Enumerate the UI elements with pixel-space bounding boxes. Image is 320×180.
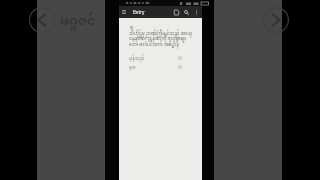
button[interactable]: Bookmark xyxy=(172,8,180,16)
button[interactable]: More options xyxy=(192,8,200,16)
button[interactable]: Search xyxy=(182,8,190,16)
button[interactable]: Next xyxy=(263,7,289,33)
staticText: မဂ္ဂဇင် xyxy=(60,8,96,36)
button[interactable]: Previous xyxy=(29,7,55,33)
staticText: မှန်သည် xyxy=(129,54,145,62)
staticText: သီဟိုဠ်မှ ဉာဏ်ကြီးရှင်သည် အာယုဝဍ္ဎနဆေး ည… xyxy=(129,29,195,50)
staticText: မှား xyxy=(129,63,136,71)
button[interactable]: Menu xyxy=(120,8,128,16)
button[interactable]: မှား xyxy=(129,63,195,71)
staticText: Entry xyxy=(133,9,145,15)
button[interactable]: မှန်သည် xyxy=(129,54,195,62)
staticText: ၈ xyxy=(130,22,134,33)
